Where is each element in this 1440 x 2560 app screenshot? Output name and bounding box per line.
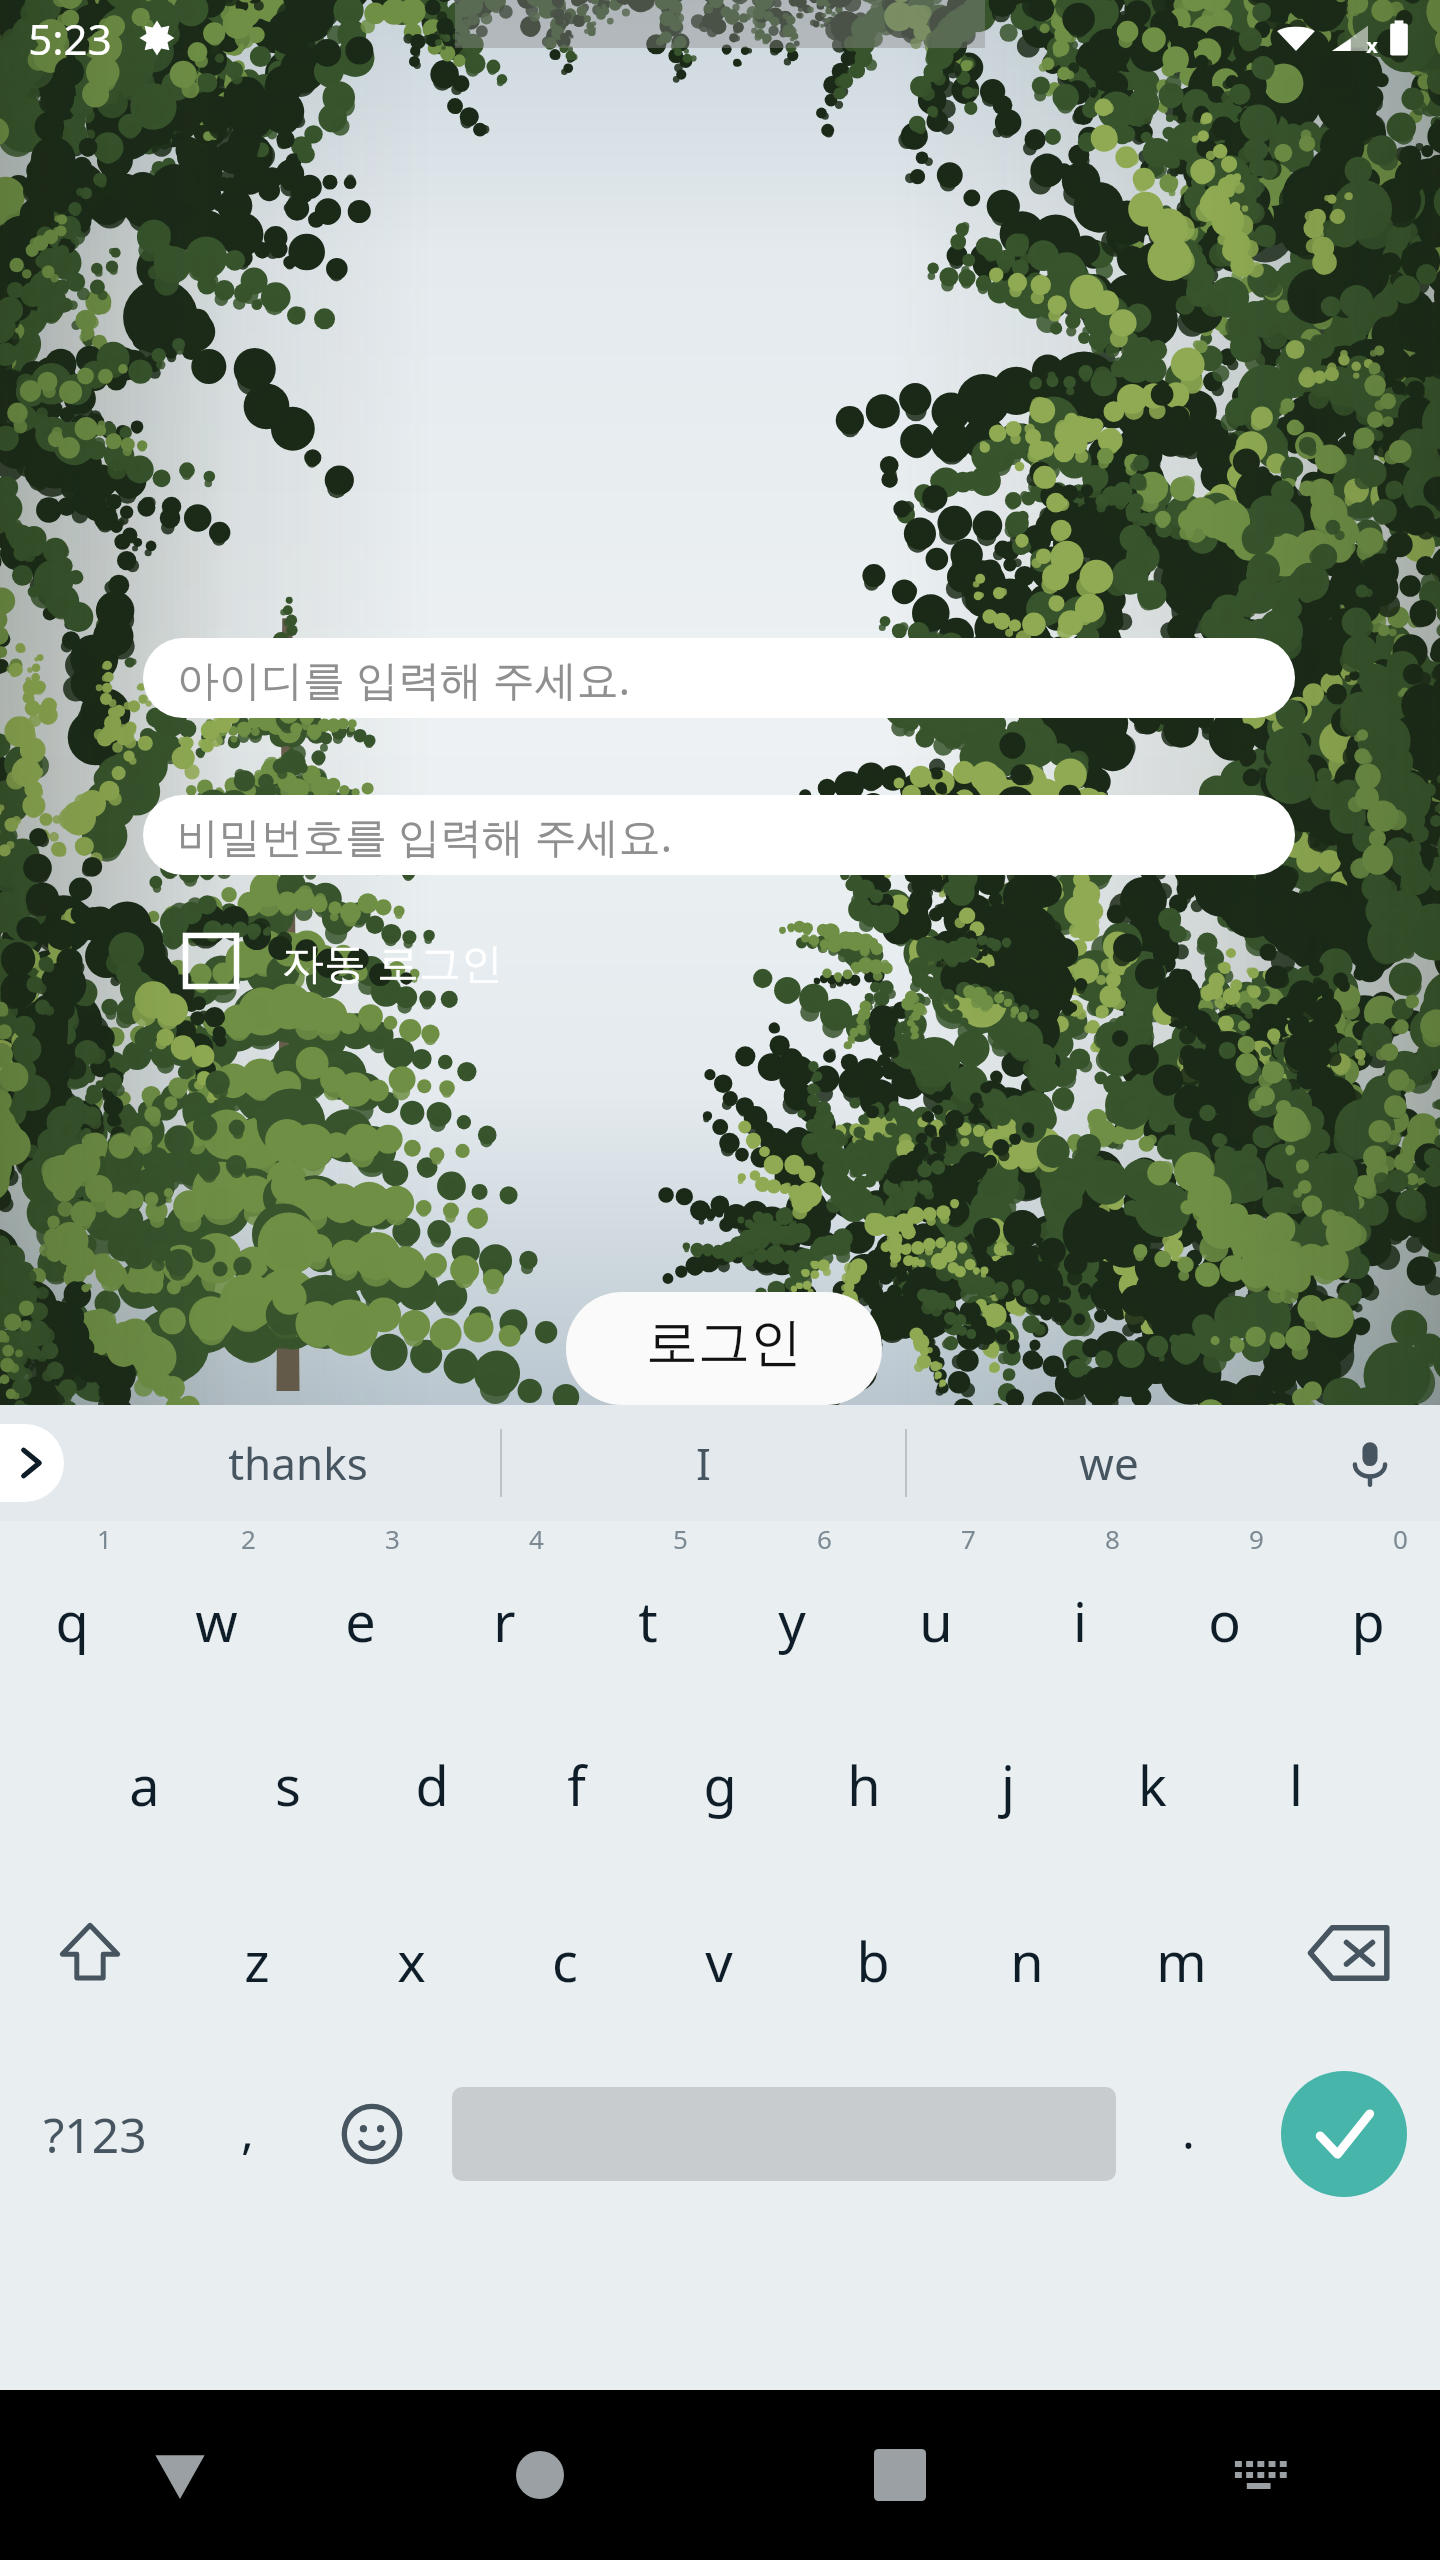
staticText: 5:23	[28, 10, 112, 67]
button[interactable]: m	[1104, 1873, 1258, 2049]
staticText: n	[1010, 1924, 1044, 1998]
staticText: b	[856, 1924, 890, 1998]
staticText: i	[1073, 1584, 1087, 1658]
button[interactable]: Emoji	[304, 2049, 440, 2239]
staticText: u	[919, 1584, 953, 1658]
button[interactable]: 1	[0, 1521, 144, 1697]
button[interactable]: 2	[144, 1521, 288, 1697]
button[interactable]: ?123	[0, 2049, 190, 2239]
staticText: l	[1289, 1748, 1303, 1822]
button[interactable]: 9	[1152, 1521, 1296, 1697]
button[interactable]: ,	[190, 2049, 304, 2239]
staticText: a	[129, 1748, 160, 1822]
staticText: 3	[385, 1521, 400, 1556]
staticText: h	[847, 1748, 881, 1822]
button[interactable]: s	[216, 1697, 360, 1873]
button[interactable]: d	[360, 1697, 504, 1873]
button[interactable]: I	[502, 1405, 905, 1521]
staticText: y	[778, 1584, 806, 1658]
button[interactable]: a	[72, 1697, 216, 1873]
button[interactable]: 자동 로그인	[182, 920, 519, 1002]
button[interactable]: l	[1224, 1697, 1368, 1873]
button[interactable]: 4	[432, 1521, 576, 1697]
button[interactable]: v	[642, 1873, 796, 2049]
staticText: o	[1208, 1584, 1241, 1658]
staticText: 0	[1393, 1521, 1408, 1556]
button[interactable]: Home	[360, 2390, 720, 2560]
staticText: k	[1138, 1748, 1167, 1822]
staticText: 6	[817, 1521, 832, 1556]
button[interactable]: Expand toolbar	[0, 1424, 64, 1502]
staticText: I	[696, 1433, 711, 1493]
button[interactable]: n	[950, 1873, 1104, 2049]
staticText: f	[567, 1748, 586, 1822]
staticText: ?123	[43, 2102, 147, 2167]
button[interactable]: 3	[288, 1521, 432, 1697]
button[interactable]: Back	[0, 2390, 360, 2560]
staticText: t	[638, 1584, 658, 1658]
button[interactable]: Voice input	[1310, 1405, 1430, 1521]
button[interactable]: 0	[1296, 1521, 1440, 1697]
button[interactable]: thanks	[96, 1405, 500, 1521]
staticText: we	[1079, 1433, 1139, 1493]
button[interactable]: 8	[1008, 1521, 1152, 1697]
staticText: 아이디를 입력해 주세요.	[177, 650, 631, 707]
staticText: 8	[1105, 1521, 1120, 1556]
staticText: d	[415, 1748, 449, 1822]
staticText: s	[275, 1748, 301, 1822]
button[interactable]: Enter	[1281, 2071, 1407, 2197]
staticText: w	[195, 1584, 238, 1658]
staticText: 2	[241, 1521, 256, 1556]
staticText: g	[703, 1748, 737, 1822]
button[interactable]: we	[907, 1405, 1310, 1521]
button[interactable]: g	[648, 1697, 792, 1873]
staticText: 7	[961, 1521, 976, 1556]
staticText: 5	[673, 1521, 688, 1556]
staticText: e	[345, 1584, 376, 1658]
staticText: v	[705, 1924, 733, 1998]
button[interactable]: 6	[720, 1521, 864, 1697]
button[interactable]: 아이디를 입력해 주세요.	[143, 638, 1295, 718]
staticText: j	[1001, 1748, 1015, 1822]
button[interactable]: 로그인	[566, 1292, 882, 1405]
staticText: 비밀번호를 입력해 주세요.	[177, 807, 673, 864]
button[interactable]: k	[1080, 1697, 1224, 1873]
button[interactable]: Switch keyboard	[1080, 2390, 1440, 2560]
staticText: 로그인	[646, 1310, 802, 1376]
staticText: x	[1366, 32, 1378, 59]
button[interactable]: j	[936, 1697, 1080, 1873]
button[interactable]: h	[792, 1697, 936, 1873]
staticText: .	[1182, 2098, 1195, 2163]
button[interactable]: Backspace	[1258, 1873, 1440, 2049]
button[interactable]: 비밀번호를 입력해 주세요.	[143, 795, 1295, 875]
button[interactable]: x	[334, 1873, 488, 2049]
staticText: x	[397, 1924, 426, 1998]
staticText: m	[1156, 1924, 1207, 1998]
button[interactable]: f	[504, 1697, 648, 1873]
button[interactable]: b	[796, 1873, 950, 2049]
button[interactable]: Shift	[0, 1873, 180, 2049]
staticText: 9	[1249, 1521, 1264, 1556]
button[interactable]: Recent apps	[720, 2390, 1080, 2560]
staticText: z	[244, 1924, 270, 1998]
staticText: 4	[529, 1521, 544, 1556]
button[interactable]: z	[180, 1873, 334, 2049]
staticText: ,	[241, 2098, 254, 2163]
button[interactable]: .	[1128, 2049, 1248, 2239]
staticText: thanks	[228, 1433, 368, 1493]
staticText: c	[552, 1924, 578, 1998]
button[interactable]: 7	[864, 1521, 1008, 1697]
staticText: r	[493, 1584, 516, 1658]
button[interactable]: 5	[576, 1521, 720, 1697]
staticText: 1	[97, 1521, 112, 1556]
staticText: 자동 로그인	[282, 933, 503, 990]
button[interactable]: c	[488, 1873, 642, 2049]
staticText: q	[55, 1584, 89, 1658]
staticText: p	[1351, 1584, 1385, 1658]
